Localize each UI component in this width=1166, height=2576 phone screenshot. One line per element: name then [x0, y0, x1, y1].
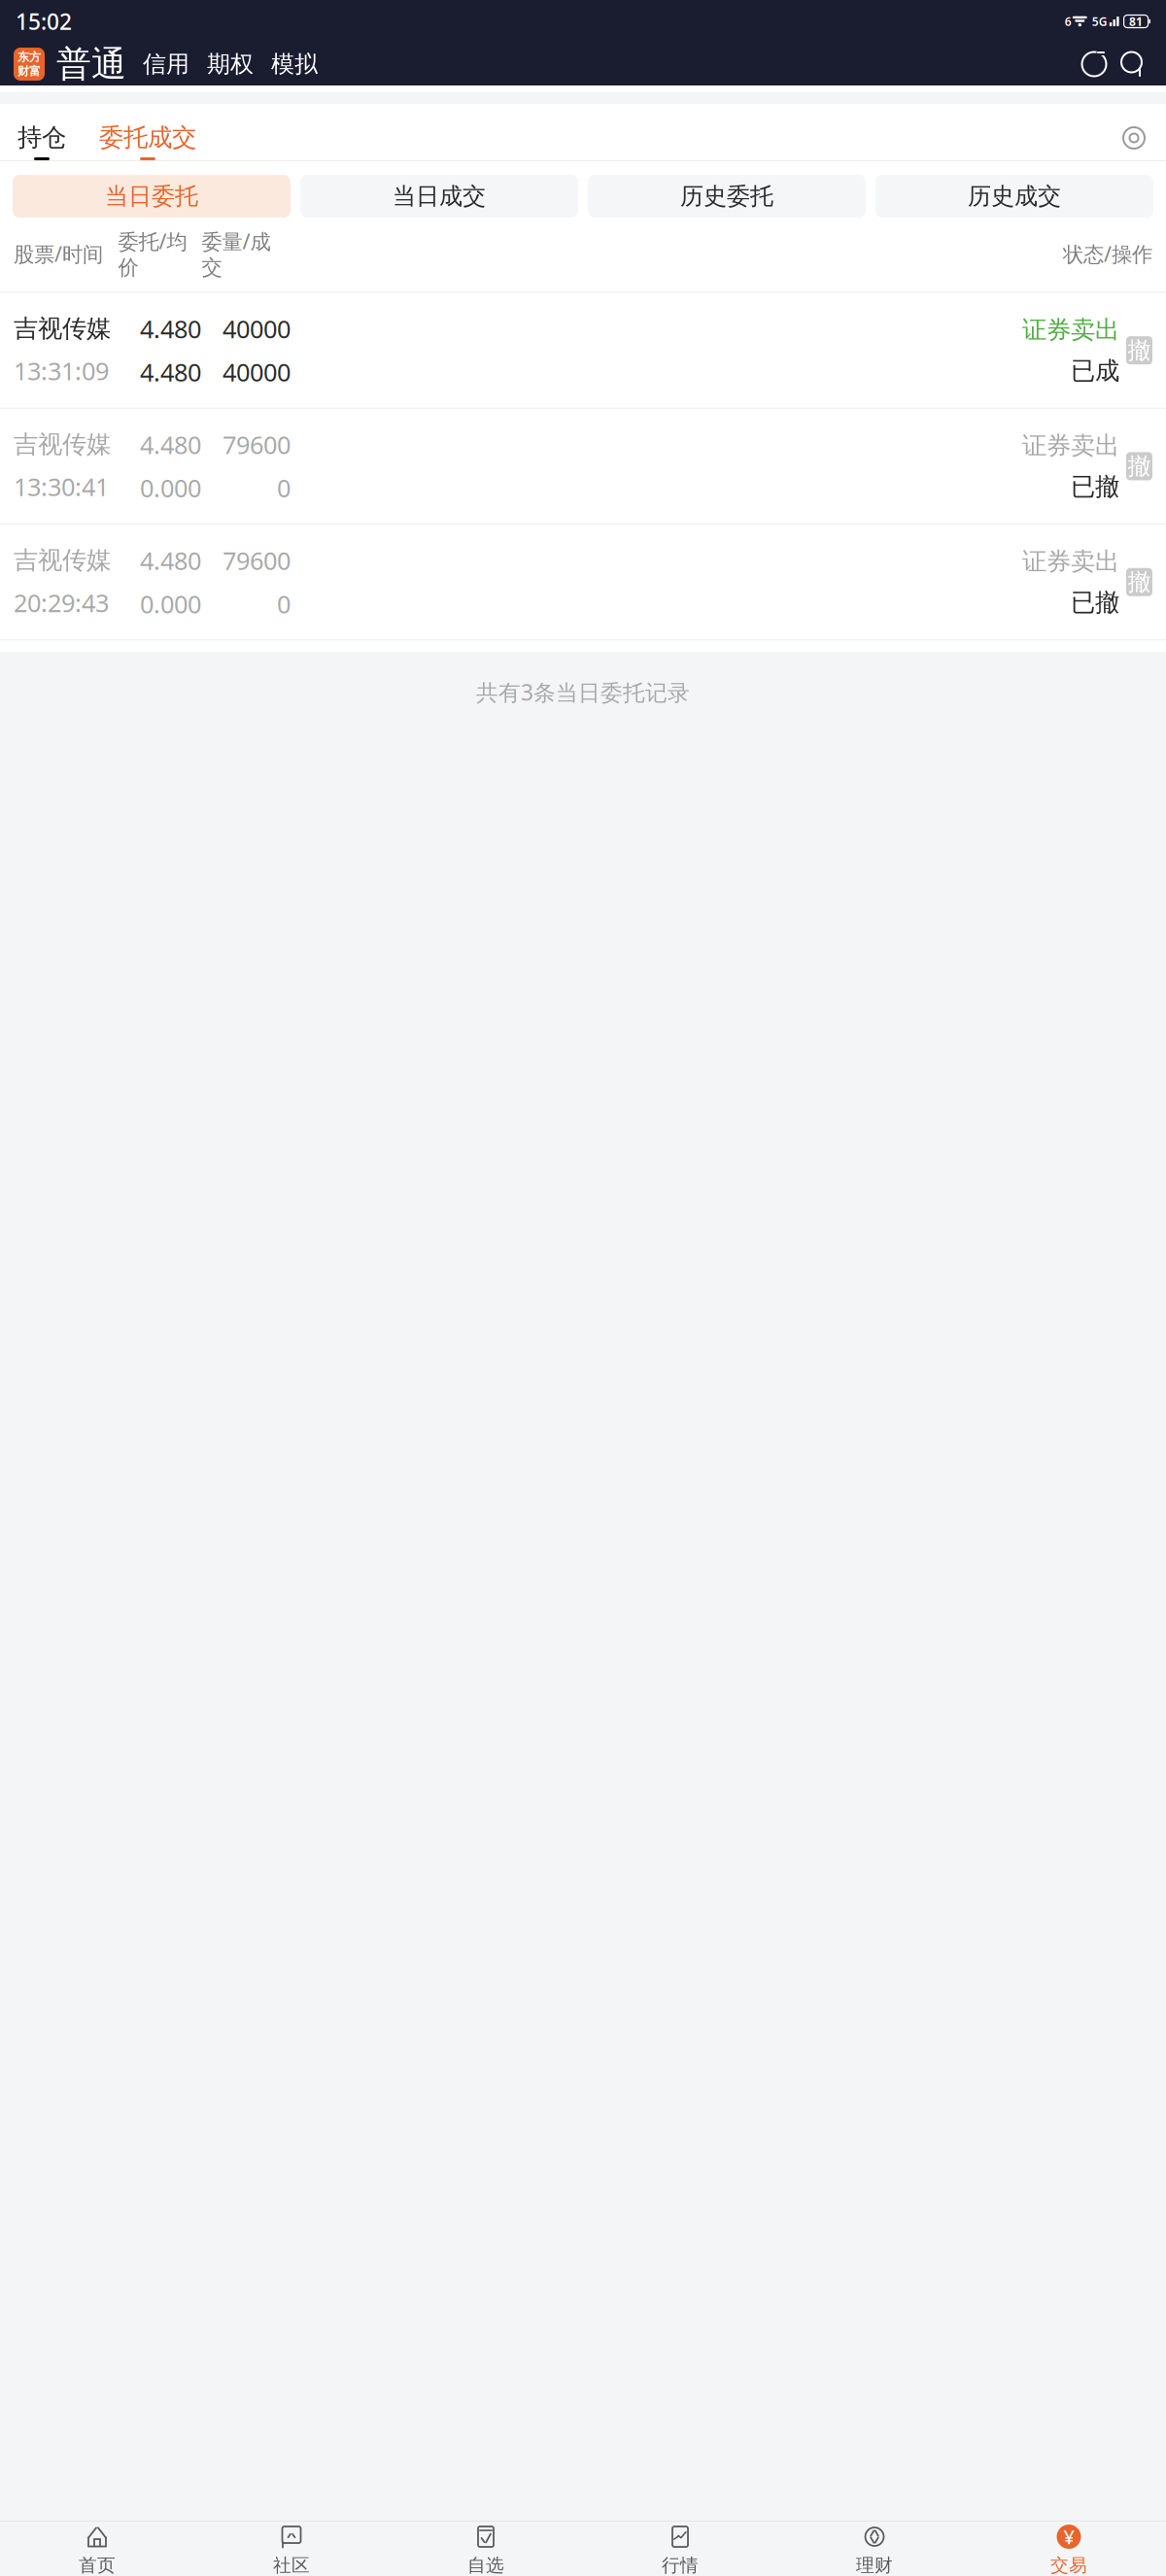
staticText: 首页 [79, 2554, 116, 2576]
button[interactable]: 撤 [1126, 452, 1152, 480]
staticText: 4.480 [140, 356, 201, 388]
staticText: 79600 [223, 428, 291, 461]
staticText: 79600 [223, 544, 291, 577]
staticText: ¥ [1063, 2524, 1074, 2550]
button[interactable]: 当日成交 [300, 175, 578, 218]
button[interactable]: 东方财富 [14, 48, 45, 81]
staticText: 40000 [223, 312, 291, 345]
staticText: 共有3条当日委托记录 [476, 677, 690, 707]
staticText: 13:30:41 [14, 470, 109, 503]
staticText: 81 [1129, 14, 1143, 29]
button[interactable]: ¥ [972, 2524, 1166, 2576]
staticText: 撤 [1128, 568, 1151, 596]
staticText: 委量/成交 [202, 227, 271, 280]
button[interactable]: 理财 [777, 2524, 972, 2576]
staticText: 撤 [1128, 452, 1151, 481]
button[interactable]: 设置 [1117, 121, 1150, 154]
staticText: 证券卖出 [1022, 431, 1119, 461]
button[interactable]: 社区 [194, 2524, 389, 2576]
staticText: 吉视传媒 [14, 545, 111, 576]
staticText: 吉视传媒 [14, 314, 111, 344]
staticText: 自选 [467, 2554, 504, 2576]
staticText: 委托成交 [99, 122, 196, 153]
staticText: 信用 [143, 50, 189, 78]
button[interactable]: 自选 [389, 2524, 583, 2576]
staticText: 0.000 [140, 587, 201, 620]
button[interactable]: 普通 [45, 43, 134, 86]
staticText: 6 [1065, 14, 1072, 29]
button[interactable]: 搜索 [1114, 45, 1152, 84]
staticText: 40000 [223, 356, 291, 388]
staticText: 13:31:09 [14, 354, 109, 387]
staticText: 持仓 [17, 122, 66, 153]
staticText: 已撤 [1071, 472, 1119, 502]
staticText: 吉视传媒 [14, 429, 111, 460]
staticText: 东方 财富 [17, 50, 41, 78]
button[interactable]: 委托成交 [93, 122, 202, 160]
staticText: 20:29:43 [14, 586, 109, 619]
staticText: 模拟 [271, 50, 318, 78]
staticText: 期权 [207, 50, 254, 78]
button[interactable]: 历史委托 [588, 175, 866, 218]
button[interactable]: 持仓 [12, 122, 72, 160]
staticText: 历史委托 [680, 182, 773, 211]
staticText: 当日成交 [393, 182, 486, 211]
button[interactable]: 撤 [1126, 568, 1152, 596]
button[interactable]: 历史成交 [875, 175, 1153, 218]
staticText: 0 [277, 587, 291, 620]
staticText: 证券卖出 [1022, 315, 1119, 345]
staticText: 已成 [1071, 356, 1119, 386]
staticText: 历史成交 [968, 182, 1061, 211]
button[interactable]: 信用 [134, 50, 198, 78]
button[interactable]: 当日委托 [13, 175, 291, 218]
button[interactable]: 首页 [0, 2524, 194, 2576]
staticText: 撤 [1128, 336, 1151, 365]
staticText: 4.480 [140, 544, 201, 577]
staticText: 股票/时间 [14, 240, 103, 268]
button[interactable]: 期权 [198, 50, 262, 78]
button[interactable]: 刷新 [1075, 45, 1114, 84]
staticText: 已撤 [1071, 587, 1119, 618]
button[interactable]: 行情 [583, 2524, 777, 2576]
staticText: 状态/操作 [1063, 240, 1152, 268]
staticText: 5G [1092, 14, 1108, 29]
staticText: 证券卖出 [1022, 546, 1119, 577]
staticText: 行情 [662, 2554, 699, 2576]
staticText: 普通 [56, 43, 126, 86]
staticText: 15:02 [16, 7, 72, 36]
staticText: 社区 [273, 2554, 310, 2576]
staticText: 0.000 [140, 472, 201, 504]
staticText: 4.480 [140, 428, 201, 461]
staticText: 交易 [1050, 2554, 1087, 2576]
staticText: 委托/均价 [118, 227, 187, 280]
staticText: 4.480 [140, 312, 201, 345]
staticText: 理财 [856, 2554, 893, 2576]
button[interactable]: 模拟 [262, 50, 326, 78]
staticText: 当日委托 [105, 182, 198, 211]
button[interactable]: 撤 [1126, 336, 1152, 364]
staticText: 0 [277, 472, 291, 504]
